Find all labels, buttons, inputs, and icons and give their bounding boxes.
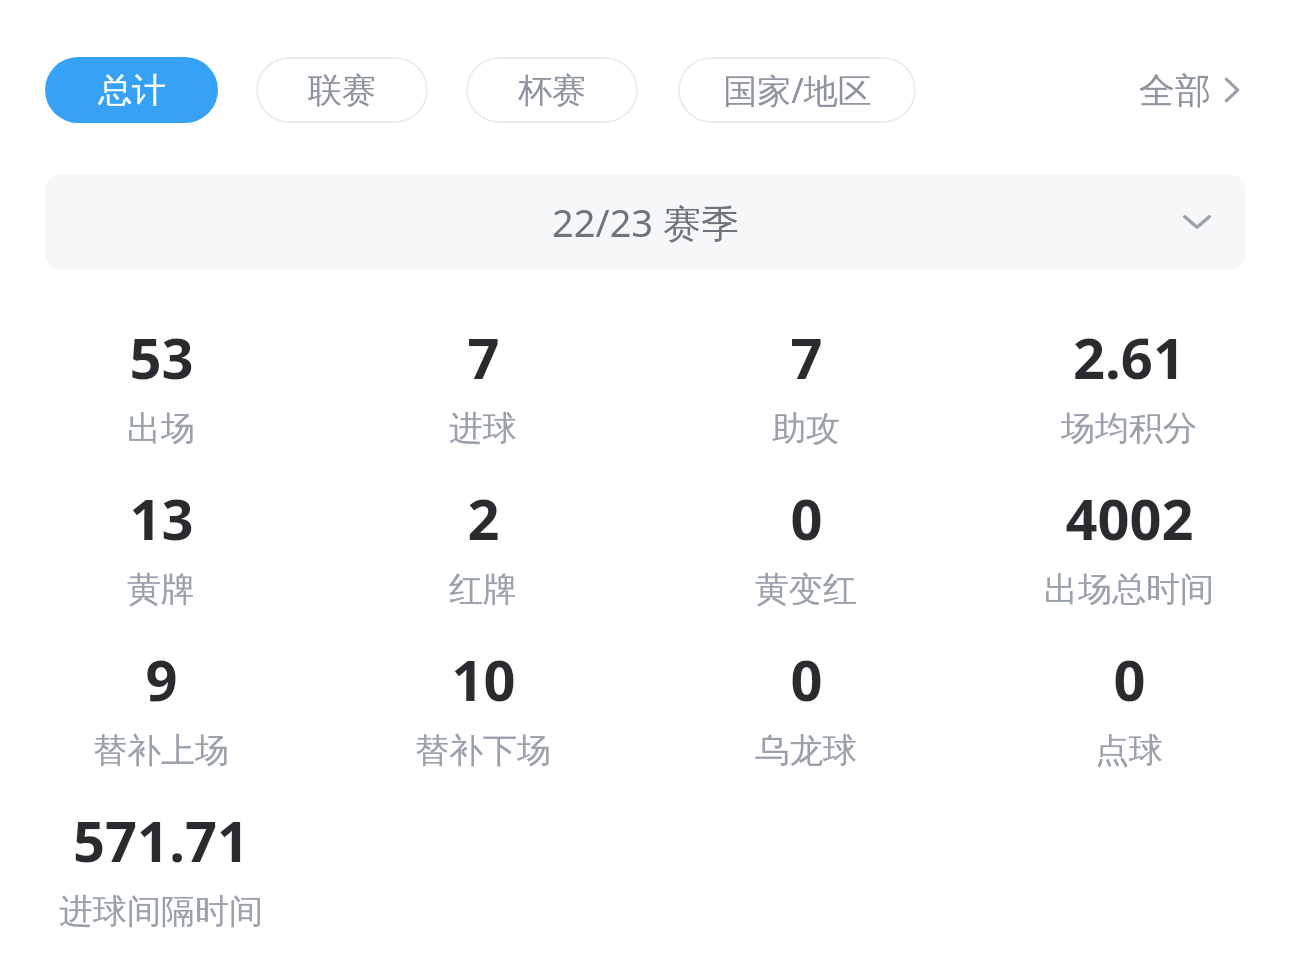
button[interactable]: 22/23 赛季	[45, 175, 1245, 269]
staticText: 总计	[98, 69, 166, 112]
staticText: 7	[467, 319, 500, 395]
staticText: 9	[145, 641, 178, 717]
button[interactable]: 总计	[45, 57, 218, 123]
button[interactable]: 571.71	[59, 802, 263, 933]
staticText: 助攻	[772, 407, 840, 450]
staticText: 全部	[1139, 68, 1211, 113]
staticText: 场均积分	[1061, 407, 1197, 450]
staticText: 点球	[1095, 729, 1163, 772]
staticText: 2.61	[1073, 319, 1185, 395]
staticText: 53	[129, 319, 194, 395]
button[interactable]: 13	[127, 480, 195, 611]
button[interactable]: 10	[415, 641, 551, 772]
button[interactable]: 7	[449, 319, 517, 450]
staticText: 4002	[1065, 480, 1194, 556]
button[interactable]: 7	[772, 319, 840, 450]
staticText: 替补下场	[415, 729, 551, 772]
staticText: 替补上场	[93, 729, 229, 772]
staticText: 0	[790, 480, 823, 556]
button[interactable]: 杯赛	[466, 57, 638, 123]
staticText: 乌龙球	[755, 729, 857, 772]
button[interactable]: 53	[127, 319, 195, 450]
staticText: 进球	[449, 407, 517, 450]
staticText: 国家/地区	[723, 67, 872, 113]
button[interactable]: 2	[449, 480, 517, 611]
staticText: 出场	[127, 407, 195, 450]
staticText: 黄牌	[127, 568, 195, 611]
staticText: 10	[451, 641, 516, 717]
button[interactable]: 9	[93, 641, 229, 772]
staticText: 22/23 赛季	[552, 196, 739, 248]
other: Expand season	[1179, 211, 1215, 233]
button[interactable]: 2.61	[1061, 319, 1197, 450]
staticText: 2	[467, 480, 500, 556]
staticText: 进球间隔时间	[59, 890, 263, 933]
staticText: 红牌	[449, 568, 517, 611]
button[interactable]: 全部	[1139, 57, 1245, 123]
staticText: 13	[129, 480, 194, 556]
staticText: 7	[790, 319, 823, 395]
button[interactable]: 国家/地区	[678, 57, 916, 123]
button[interactable]: 0	[755, 641, 857, 772]
staticText: 联赛	[308, 69, 376, 112]
button[interactable]: 4002	[1044, 480, 1214, 611]
button[interactable]: 0	[1095, 641, 1163, 772]
staticText: 出场总时间	[1044, 568, 1214, 611]
staticText: 黄变红	[755, 568, 857, 611]
staticText: 0	[1113, 641, 1146, 717]
staticText: 571.71	[73, 802, 249, 878]
button[interactable]: 0	[755, 480, 857, 611]
staticText: 0	[790, 641, 823, 717]
button[interactable]: 联赛	[256, 57, 428, 123]
staticText: 杯赛	[518, 69, 586, 112]
